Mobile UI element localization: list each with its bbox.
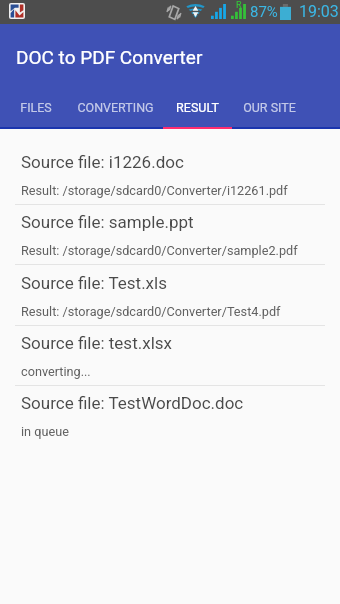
button[interactable]: Source file: TestWordDoc.doc [0, 385, 340, 445]
staticText: Source file: test.xlsx [21, 333, 172, 353]
button[interactable]: FILES [7, 88, 65, 127]
staticText: 19:03 [299, 2, 339, 21]
staticText: OUR SITE [243, 100, 296, 115]
button[interactable]: Source file: i1226.doc [0, 144, 340, 204]
other: Mobile signal SIM 1 [211, 4, 226, 19]
staticText: converting... [21, 364, 91, 379]
staticText: R [236, 0, 242, 11]
other: Wi-Fi connected [186, 3, 205, 18]
staticText: Result: /storage/sdcard0/Converter/sampl… [21, 243, 298, 258]
staticText: Source file: sample.ppt [21, 212, 194, 232]
button[interactable]: Source file: Test.xls [0, 265, 340, 325]
button[interactable]: OUR SITE [232, 88, 307, 127]
staticText: in queue [21, 424, 69, 439]
staticText: Source file: TestWordDoc.doc [21, 393, 244, 413]
staticText: Result: /storage/sdcard0/Converter/i1226… [21, 183, 288, 198]
staticText: Result: /storage/sdcard0/Converter/Test4… [21, 304, 281, 319]
button[interactable]: CONVERTING [65, 88, 166, 127]
staticText: DOC to PDF Converter [16, 46, 203, 68]
staticText: 87% [250, 3, 278, 21]
staticText: Source file: i1226.doc [21, 152, 184, 172]
staticText: FILES [20, 100, 52, 115]
button[interactable]: RESULT [163, 88, 232, 127]
other: Battery 87 percent [280, 4, 291, 20]
button[interactable]: Source file: test.xlsx [0, 325, 340, 385]
other: DOC to PDF Converter notification [9, 3, 25, 19]
staticText: CONVERTING [77, 100, 154, 115]
button[interactable]: Source file: sample.ppt [0, 204, 340, 264]
other: Vibrate mode [167, 5, 181, 20]
staticText: Source file: Test.xls [21, 273, 167, 293]
other: Mobile signal SIM 2 roaming [231, 4, 246, 19]
staticText: RESULT [176, 100, 219, 115]
